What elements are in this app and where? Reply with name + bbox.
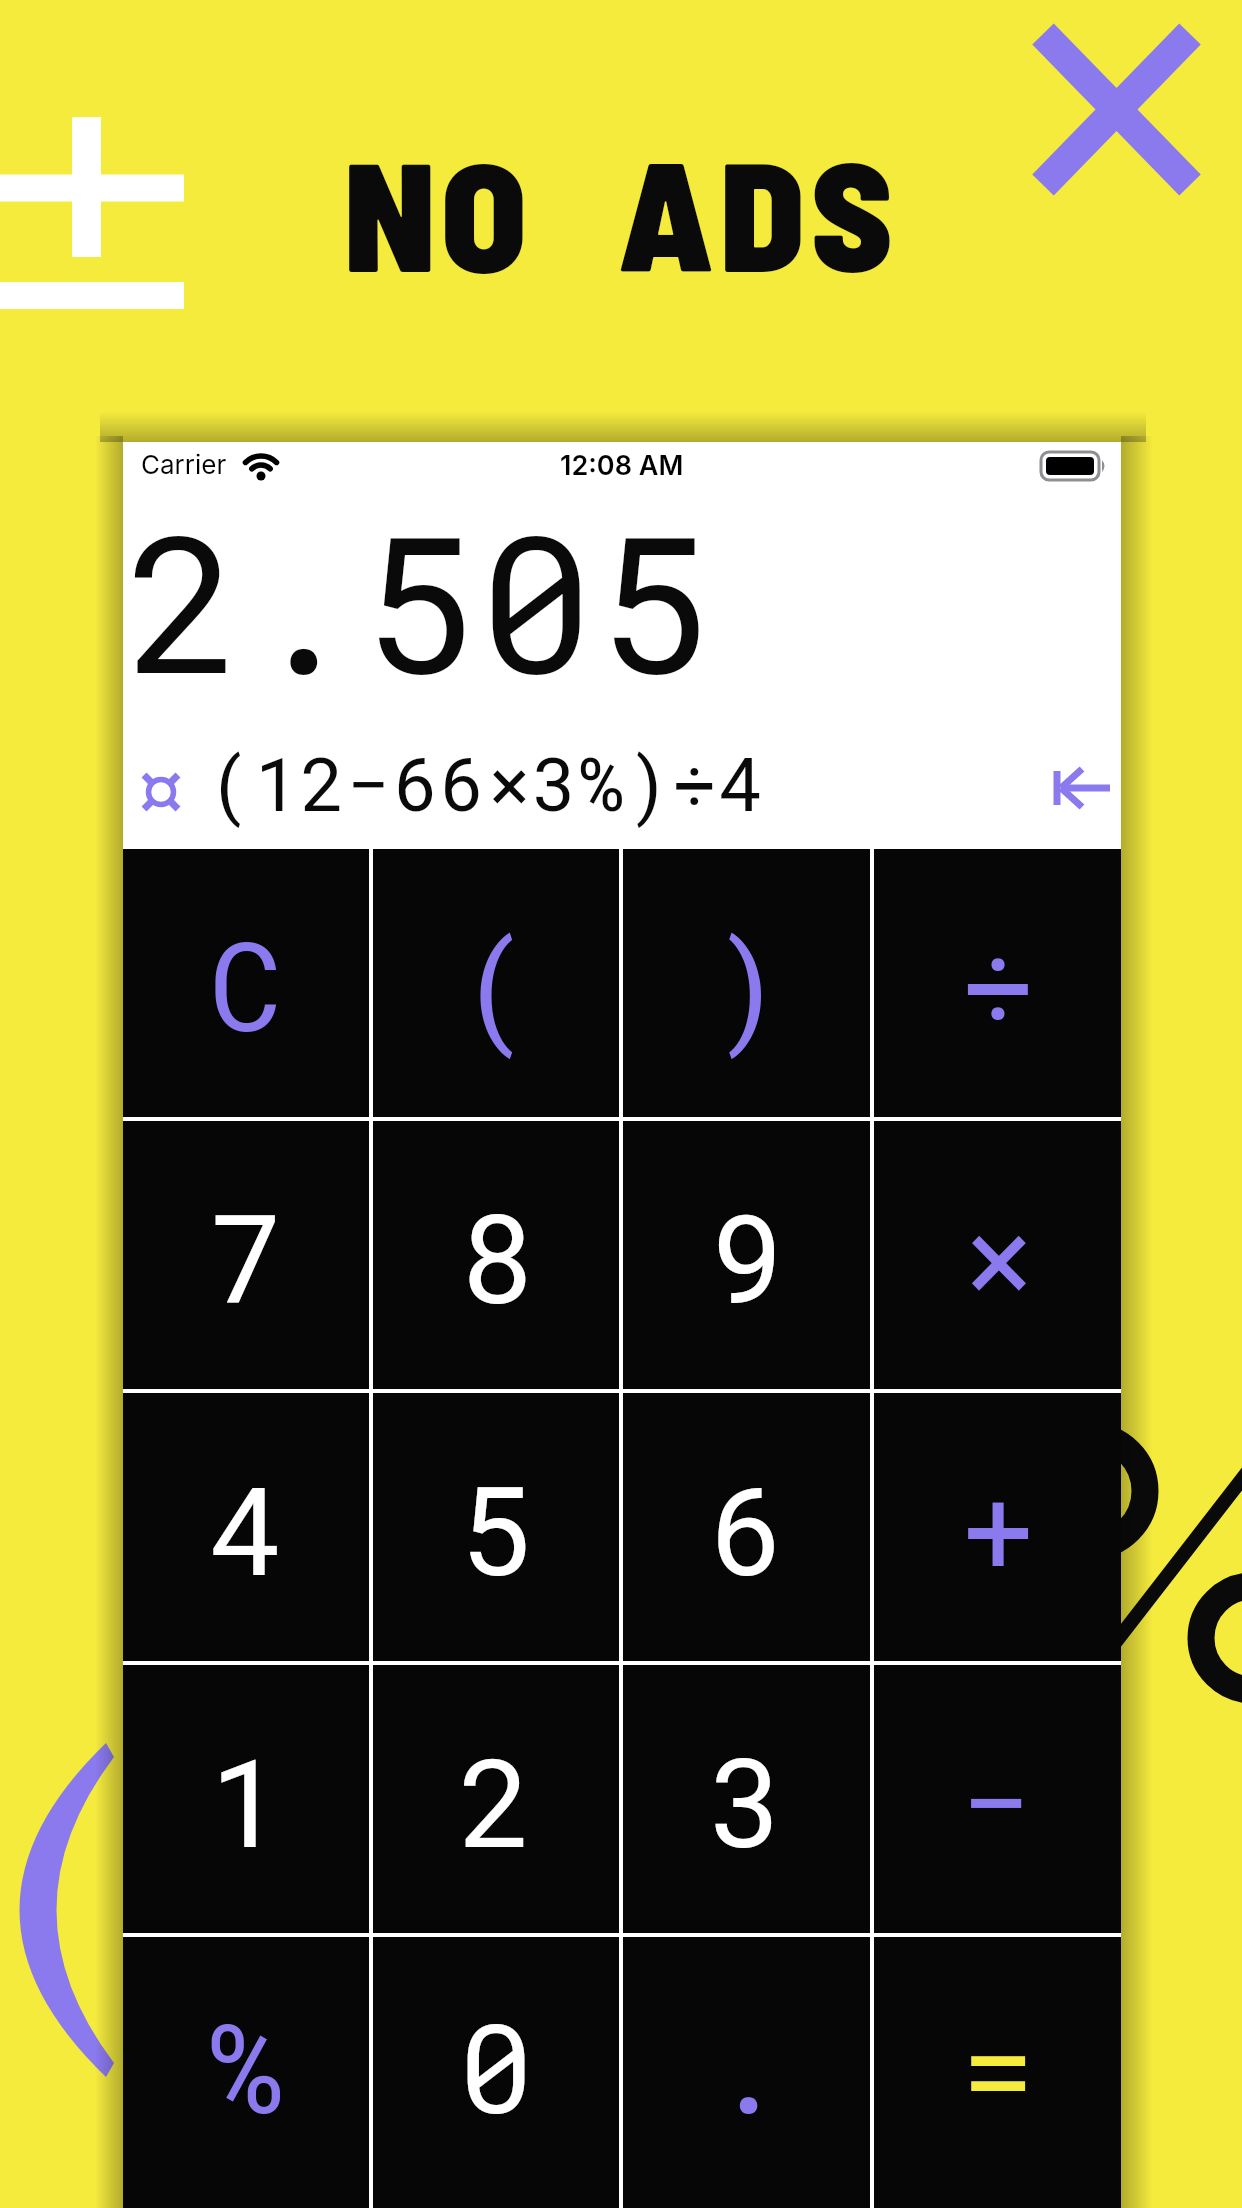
staticText: ÷ [961,902,1035,1064]
staticText: C [209,902,283,1064]
staticText: 2 [459,1718,533,1880]
staticText: . [710,1984,784,2146]
button[interactable]: 4 [123,1393,369,1661]
staticText: Carrier [141,449,227,480]
button[interactable]: − [874,1665,1121,1933]
staticText: 12:08 AM [560,449,684,482]
button[interactable]: ) [623,849,870,1117]
button[interactable] [1044,765,1116,811]
button[interactable]: + [874,1393,1121,1661]
button[interactable]: % [123,1937,369,2208]
staticText: 8 [459,1174,533,1336]
button[interactable]: 6 [623,1393,870,1661]
staticText: 9 [710,1174,784,1336]
button[interactable]: ÷ [874,849,1121,1117]
button[interactable]: 3 [623,1665,870,1933]
staticText: 3 [710,1718,784,1880]
button[interactable]: = [874,1937,1121,2208]
button[interactable]: . [623,1937,870,2208]
button[interactable]: × [874,1121,1121,1389]
staticText: = [961,1984,1035,2146]
staticText: 6 [710,1446,784,1608]
staticText: % [209,1984,283,2146]
staticText: 4 [209,1446,283,1608]
staticText: ) [710,902,784,1064]
button[interactable]: 9 [623,1121,870,1389]
staticText: − [961,1718,1035,1880]
staticText: ADS [618,118,899,303]
button[interactable]: C [123,849,369,1117]
button[interactable]: 7 [123,1121,369,1389]
button[interactable]: 2 [373,1665,619,1933]
button[interactable]: 5 [373,1393,619,1661]
staticText: (12−66×3%)÷4 [208,733,765,831]
staticText: 7 [209,1174,283,1336]
staticText: 2.505 [127,475,715,724]
button[interactable]: ( [373,849,619,1117]
staticText: × [961,1174,1035,1336]
button[interactable]: 0 [373,1937,619,2208]
staticText: 5 [459,1446,533,1608]
staticText: 0 [459,1984,533,2146]
staticText: NO [344,118,533,303]
staticText: ( [459,902,533,1064]
staticText: + [961,1446,1035,1608]
button[interactable]: 1 [123,1665,369,1933]
staticText: 1 [209,1718,283,1880]
button[interactable]: 8 [373,1121,619,1389]
